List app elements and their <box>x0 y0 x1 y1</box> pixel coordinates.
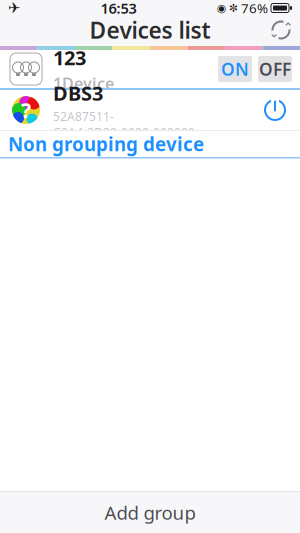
button[interactable]: Power <box>258 93 292 127</box>
staticText: 52A87511-C2A4-3D29-0000-000000… <box>53 108 204 140</box>
button[interactable]: Add group <box>0 492 300 533</box>
staticText: Non grouping device <box>8 132 204 156</box>
staticText: ⌄ <box>269 26 279 40</box>
staticText: OFF <box>259 57 291 80</box>
staticText: Add group <box>104 500 195 525</box>
staticText: 1Device <box>53 73 114 94</box>
staticText: Devices list <box>89 15 210 45</box>
button[interactable]: 123 <box>0 50 300 88</box>
staticText: ✈ <box>8 0 20 16</box>
staticText: ? <box>21 96 31 124</box>
button[interactable]: ON <box>218 56 252 82</box>
button[interactable]: Refresh <box>262 16 300 44</box>
staticText: 123 <box>53 44 86 71</box>
staticText: ◉ <box>217 2 226 14</box>
staticText: 76% <box>241 0 268 17</box>
staticText: ✼ <box>229 2 238 14</box>
staticText: ⌃ <box>283 20 293 34</box>
staticText: 16:53 <box>100 0 136 18</box>
staticText: ON <box>221 57 249 80</box>
button[interactable]: OFF <box>258 56 292 82</box>
button[interactable]: ? <box>0 90 300 130</box>
staticText: DBS3 <box>53 80 103 106</box>
